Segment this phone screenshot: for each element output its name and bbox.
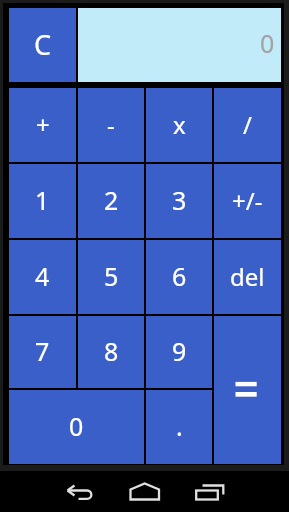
button[interactable]: +/- (214, 164, 281, 238)
staticText: 0 (69, 409, 84, 443)
staticText: . (176, 409, 183, 443)
button[interactable]: 1 (9, 164, 76, 238)
staticText: C (34, 26, 52, 63)
button[interactable] (186, 471, 234, 512)
staticText: 0 (260, 26, 275, 60)
button[interactable]: 5 (78, 240, 144, 314)
button[interactable]: . (146, 390, 212, 464)
button[interactable]: - (78, 88, 144, 162)
button[interactable]: C (9, 8, 76, 82)
staticText: 4 (35, 259, 50, 293)
staticText: / (243, 108, 252, 141)
staticText: - (107, 108, 115, 141)
button[interactable]: 9 (146, 316, 212, 388)
staticText: x (173, 108, 186, 141)
staticText: 8 (104, 334, 119, 368)
staticText: 3 (172, 183, 187, 217)
button[interactable]: 0 (9, 390, 144, 464)
staticText: +/- (232, 184, 263, 217)
button[interactable]: 8 (78, 316, 144, 388)
button[interactable]: 3 (146, 164, 212, 238)
button[interactable]: 7 (9, 316, 76, 388)
staticText: 7 (35, 334, 50, 368)
staticText: 5 (104, 259, 119, 293)
staticText: 2 (104, 183, 119, 217)
button[interactable]: / (214, 88, 281, 162)
button[interactable]: 6 (146, 240, 212, 314)
button[interactable]: x (146, 88, 212, 162)
button[interactable] (56, 471, 104, 512)
button[interactable] (214, 316, 281, 464)
staticText: del (230, 260, 265, 293)
button[interactable]: del (214, 240, 281, 314)
button[interactable]: 2 (78, 164, 144, 238)
button[interactable] (121, 471, 169, 512)
staticText: + (36, 108, 50, 141)
staticText: 9 (172, 334, 187, 368)
button[interactable]: 4 (9, 240, 76, 314)
button[interactable]: + (9, 88, 76, 162)
staticText: 1 (35, 183, 50, 217)
staticText: 6 (172, 259, 187, 293)
